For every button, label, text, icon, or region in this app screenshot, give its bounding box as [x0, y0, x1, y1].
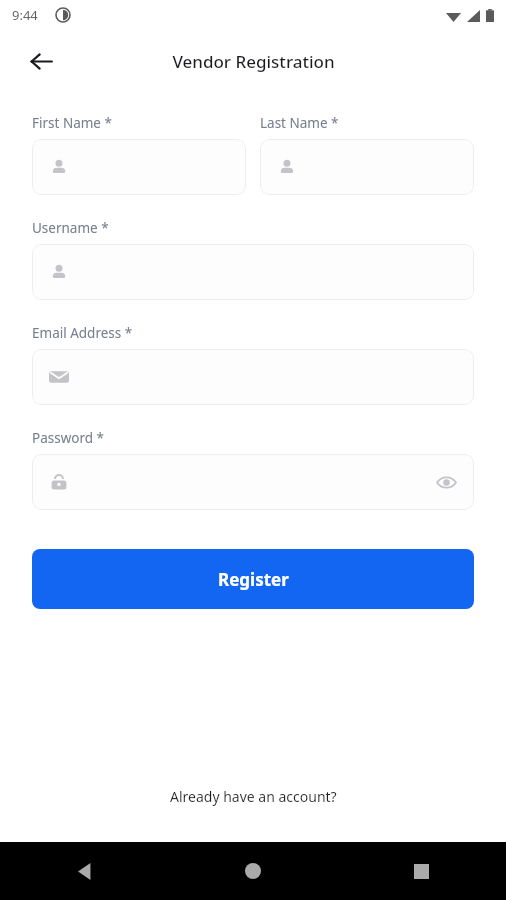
staticText: Email Address *	[32, 324, 133, 342]
staticText: Username *	[32, 219, 109, 237]
staticText: Password *	[32, 429, 105, 447]
button[interactable]	[260, 139, 474, 195]
button[interactable]: Recents	[337, 842, 506, 900]
button[interactable]: Show password	[32, 454, 474, 510]
button[interactable]: Back	[18, 38, 64, 84]
button[interactable]	[32, 139, 246, 195]
button[interactable]: Register	[32, 549, 474, 609]
staticText: Vendor Registration	[172, 50, 335, 73]
button[interactable]	[32, 244, 474, 300]
staticText: 9:44	[12, 6, 38, 24]
button[interactable]: Home	[168, 842, 337, 900]
button[interactable]: Already have an account?	[0, 781, 506, 812]
staticText: Last Name *	[260, 114, 339, 132]
staticText: First Name *	[32, 114, 112, 132]
staticText: Register	[218, 568, 289, 591]
button[interactable]: Show password	[426, 462, 466, 502]
button[interactable]	[32, 349, 474, 405]
staticText: Already have an account?	[170, 787, 337, 806]
button[interactable]: Back	[0, 842, 168, 900]
